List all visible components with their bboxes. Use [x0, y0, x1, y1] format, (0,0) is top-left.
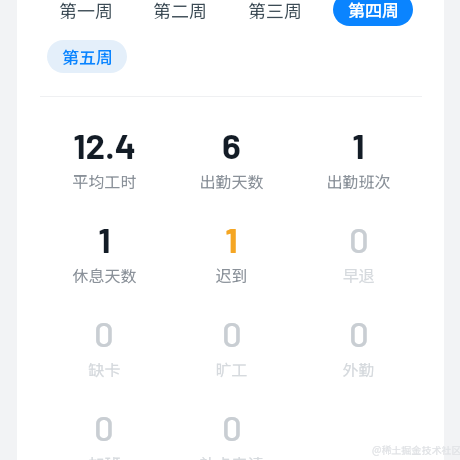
staticText: 6 [222, 124, 241, 166]
staticText: 早退 [342, 263, 375, 286]
staticText: 第二周 [153, 0, 207, 23]
staticText: @稀土掘金技术社区 [372, 442, 460, 456]
staticText: 第三周 [248, 0, 302, 23]
staticText: 旷工 [215, 357, 248, 380]
staticText: 0 [222, 406, 242, 448]
staticText: 第一周 [59, 0, 113, 23]
button[interactable]: 第五周 [47, 40, 127, 73]
staticText: 1 [225, 218, 238, 260]
button[interactable]: 1 [168, 218, 295, 286]
button[interactable]: 0 [168, 406, 295, 460]
button[interactable]: 12.4 [40, 124, 168, 192]
staticText: 12.4 [73, 124, 136, 166]
staticText: 出勤班次 [326, 169, 391, 192]
button[interactable]: 0 [40, 406, 168, 460]
staticText: 第四周 [348, 0, 399, 22]
staticText: 0 [349, 218, 369, 260]
staticText: 平均工时 [72, 169, 137, 192]
button[interactable]: 第一周 [46, 0, 126, 26]
button[interactable]: 0 [295, 312, 422, 380]
button[interactable]: 第四周 [333, 0, 413, 26]
staticText: 0 [222, 312, 242, 354]
staticText: 0 [349, 312, 369, 354]
staticText: 1 [98, 218, 111, 260]
staticText: 出勤天数 [199, 169, 264, 192]
button[interactable]: 第二周 [140, 0, 220, 26]
staticText: 补卡申请 [199, 451, 264, 460]
staticText: 0 [94, 312, 114, 354]
button[interactable]: 0 [40, 312, 168, 380]
button[interactable]: 0 [168, 312, 295, 380]
staticText: 外勤 [342, 357, 375, 380]
staticText: 休息天数 [72, 263, 137, 286]
staticText: 0 [94, 406, 114, 448]
staticText: 缺卡 [88, 357, 121, 380]
staticText: 加班 [88, 451, 121, 460]
staticText: 1 [352, 124, 365, 166]
staticText: 迟到 [215, 263, 248, 286]
button[interactable]: 第三周 [235, 0, 315, 26]
staticText: 第五周 [62, 44, 113, 69]
button[interactable]: 1 [295, 124, 422, 192]
button[interactable]: 0 [295, 218, 422, 286]
button[interactable]: 6 [168, 124, 295, 192]
button[interactable]: 1 [40, 218, 168, 286]
